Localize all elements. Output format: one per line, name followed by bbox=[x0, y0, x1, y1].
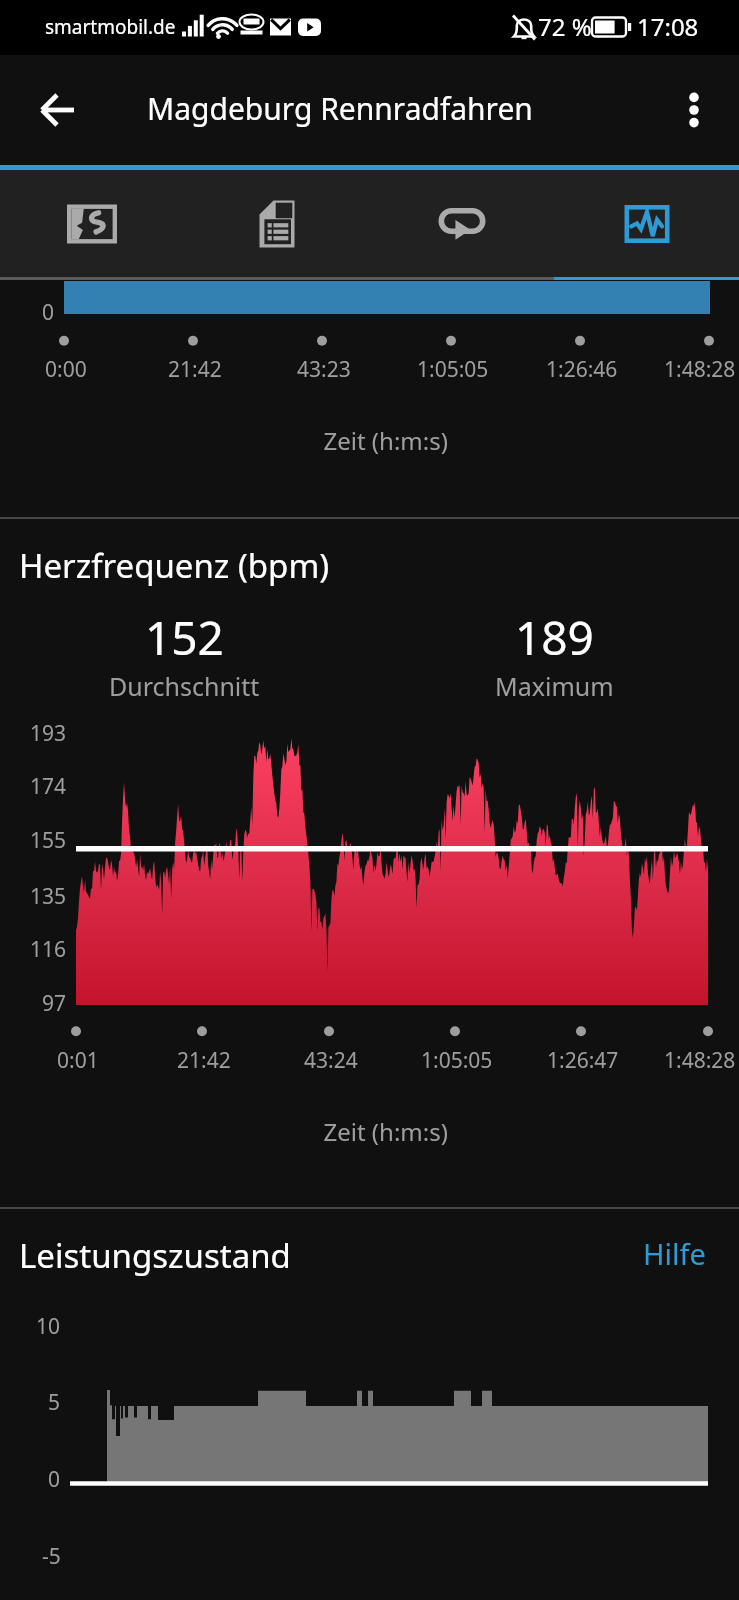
staticText: 72 % bbox=[538, 10, 592, 43]
button[interactable]: Laps bbox=[369, 170, 554, 277]
staticText: smartmobil.de bbox=[45, 14, 176, 40]
staticText: Leistungszustand bbox=[19, 1233, 291, 1278]
staticText: Hilfe bbox=[643, 1234, 706, 1273]
button[interactable]: Details bbox=[184, 170, 369, 277]
staticText: 189 bbox=[515, 606, 594, 669]
button[interactable]: Hilfe bbox=[643, 1232, 739, 1279]
button[interactable]: More options bbox=[666, 82, 722, 138]
staticText: Durchschnitt bbox=[109, 669, 260, 703]
staticText: Maximum bbox=[495, 669, 614, 703]
staticText: 152 bbox=[145, 606, 224, 669]
button[interactable]: Back bbox=[30, 82, 86, 138]
staticText: Herzfrequenz (bpm) bbox=[19, 543, 330, 588]
button[interactable]: Charts bbox=[554, 170, 739, 277]
button[interactable]: Map bbox=[0, 170, 184, 277]
staticText: 17:08 bbox=[637, 10, 699, 43]
staticText: Magdeburg Rennradfahren bbox=[147, 88, 533, 129]
